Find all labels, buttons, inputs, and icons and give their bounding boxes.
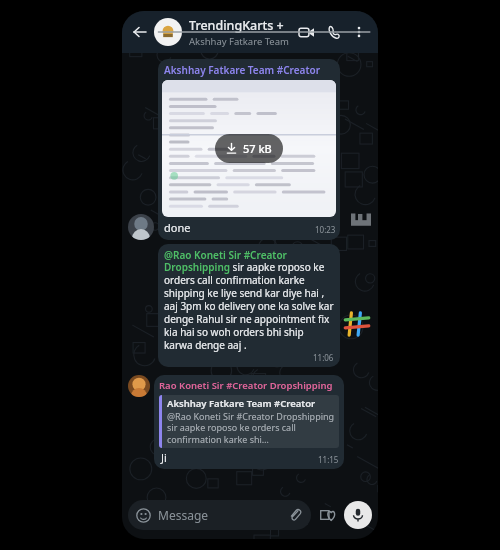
staticText: Akshhay Fatkare Team #Creator	[167, 397, 316, 410]
staticText: 11:15	[318, 454, 339, 465]
button[interactable]: Record voice message	[344, 501, 372, 529]
button[interactable]: @Rao Koneti Sir #Creator Dropshipping si…	[158, 244, 340, 367]
staticText: 10:23	[315, 224, 336, 235]
button[interactable]: Akshhay Fatkare Team #Creator	[159, 395, 339, 448]
staticText: Message	[158, 507, 209, 523]
staticText: Ji	[161, 450, 167, 465]
staticText: 11:06	[313, 352, 334, 363]
button[interactable]: Rao Koneti Sir #Creator Dropshipping	[154, 375, 344, 469]
button[interactable]: Message	[128, 500, 311, 530]
staticText: Akshhay Fatkare Team #Creator	[164, 63, 320, 77]
staticText: TrendingKarts + #…	[189, 17, 293, 34]
staticText: Rao Koneti Sir #Creator Dropshipping	[159, 379, 333, 392]
button[interactable]: 57 kB	[215, 134, 283, 163]
button[interactable]	[154, 18, 182, 46]
staticText: CREATOR	[262, 194, 378, 228]
staticText: Akshhay Fatkare Team #…	[189, 35, 293, 48]
button[interactable]: More options	[348, 21, 370, 43]
staticText: done	[164, 220, 191, 235]
button[interactable]: Stickers	[317, 503, 341, 527]
button[interactable]: Back	[126, 19, 152, 45]
staticText: @Rao Koneti Sir #Creator Dropshipping si…	[164, 248, 334, 352]
staticText: 57 kB	[243, 141, 272, 156]
button[interactable]: Call	[321, 19, 347, 45]
button[interactable]: TrendingKarts + #…	[189, 17, 293, 48]
button[interactable]: Video call	[293, 19, 319, 45]
staticText: @Rao Koneti Sir #Creator Dropshipping si…	[167, 410, 336, 446]
button[interactable]: Akshhay Fatkare Team #Creator	[158, 59, 340, 240]
button[interactable]: Attach	[287, 507, 303, 523]
